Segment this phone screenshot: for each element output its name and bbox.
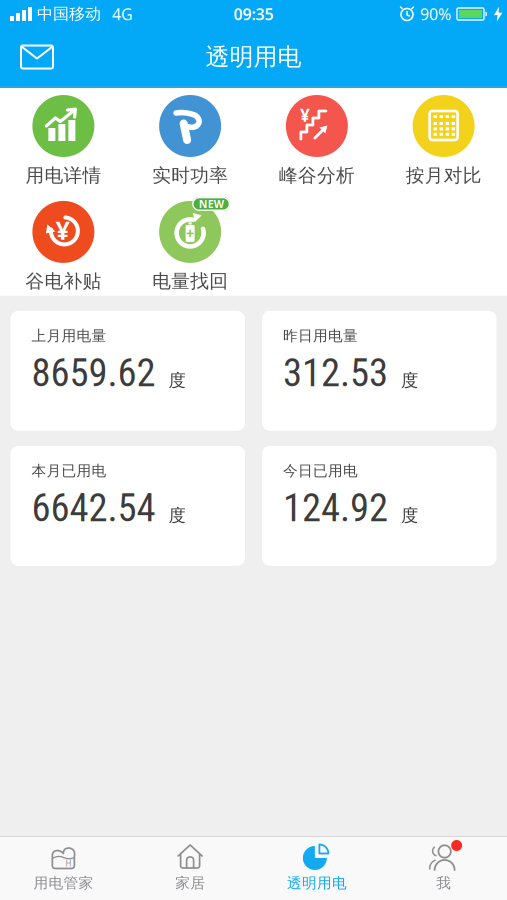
staticText: 度: [401, 505, 418, 526]
button[interactable]: 家居: [127, 843, 254, 892]
staticText: 09:35: [233, 3, 273, 25]
button[interactable]: 我: [380, 843, 507, 892]
button[interactable]: H: [0, 843, 127, 892]
staticText: 度: [401, 370, 418, 391]
staticText: 家居: [175, 874, 205, 892]
staticText: 中国移动: [37, 4, 101, 24]
button[interactable]: ¥: [0, 201, 127, 293]
staticText: 实时功率: [152, 164, 228, 187]
button[interactable]: 按月对比: [380, 95, 507, 187]
staticText: 度: [168, 370, 185, 391]
button[interactable]: 实时功率: [127, 95, 254, 187]
button[interactable]: 用电详情: [0, 95, 127, 187]
staticText: 透明用电: [287, 874, 347, 892]
staticText: 8659.62: [31, 351, 155, 395]
staticText: ¥: [300, 103, 310, 126]
staticText: 6642.54: [31, 486, 155, 530]
staticText: 用电管家: [33, 874, 93, 892]
staticText: 124.92: [283, 486, 388, 530]
button[interactable]: 昨日用电量: [262, 311, 496, 431]
staticText: 峰谷分析: [279, 164, 355, 187]
staticText: 今日已用电: [283, 462, 358, 480]
staticText: 312.53: [283, 351, 388, 395]
staticText: 用电详情: [25, 164, 101, 187]
button[interactable]: 透明用电: [253, 843, 380, 892]
staticText: ¥: [55, 213, 69, 247]
staticText: 按月对比: [406, 164, 482, 187]
staticText: NEW: [199, 197, 224, 211]
button[interactable]: 本月已用电: [10, 446, 245, 566]
staticText: H: [65, 858, 71, 869]
staticText: 透明用电: [205, 42, 301, 72]
staticText: 度: [168, 505, 185, 526]
staticText: 90%: [420, 3, 451, 25]
staticText: 我: [436, 874, 451, 892]
staticText: 谷电补贴: [25, 270, 101, 293]
staticText: 昨日用电量: [283, 327, 358, 345]
button[interactable]: 消息: [0, 44, 54, 69]
staticText: 本月已用电: [31, 462, 106, 480]
staticText: 电量找回: [152, 270, 228, 293]
button[interactable]: ¥: [253, 95, 380, 187]
button[interactable]: NEW: [127, 201, 254, 293]
button[interactable]: 今日已用电: [262, 446, 496, 566]
button[interactable]: 上月用电量: [10, 311, 245, 431]
staticText: 4G: [112, 3, 133, 25]
staticText: 上月用电量: [31, 327, 106, 345]
